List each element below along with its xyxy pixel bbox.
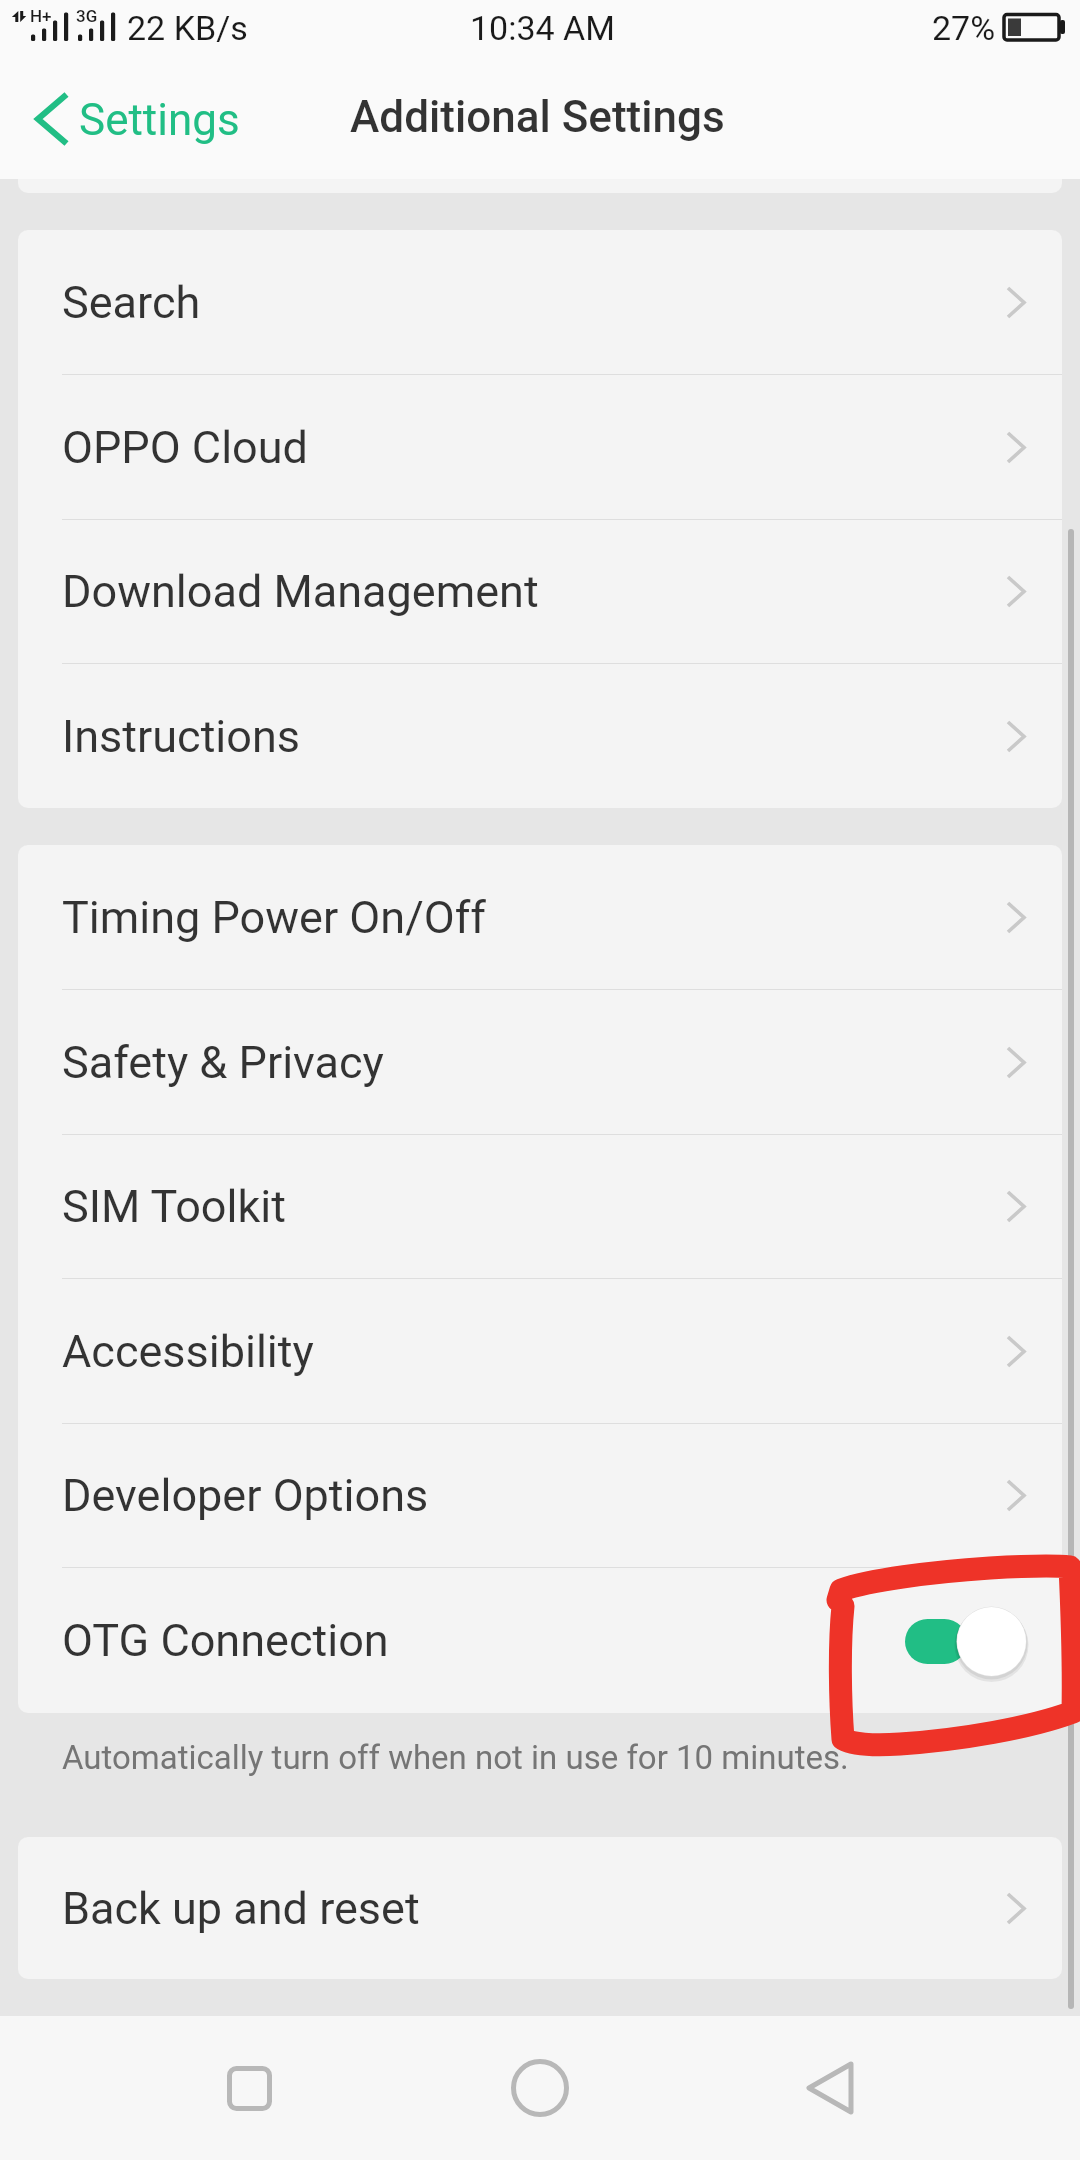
button[interactable]: Timing Power On/Off [18, 845, 1062, 990]
staticText: Safety & Privacy [62, 1036, 384, 1089]
staticText: Search [62, 276, 201, 329]
staticText: 22 KB/s [127, 8, 248, 48]
button[interactable]: OTG Connection [18, 1568, 1062, 1713]
button[interactable]: OTG Connection toggle [902, 1601, 1026, 1681]
button[interactable]: Safety & Privacy [18, 990, 1062, 1135]
staticText: 27% [932, 8, 996, 48]
staticText: Instructions [62, 710, 301, 763]
button[interactable]: SIM Toolkit [18, 1134, 1062, 1279]
staticText: Developer Options [62, 1469, 429, 1522]
button[interactable]: Accessibility [18, 1279, 1062, 1424]
button[interactable]: Download Management [18, 519, 1062, 664]
button[interactable]: Developer Options [18, 1423, 1062, 1568]
button[interactable]: Home [465, 2016, 615, 2160]
staticText: Settings [79, 94, 240, 146]
button[interactable]: Recent apps [174, 2016, 324, 2160]
button[interactable]: Search [18, 230, 1062, 375]
staticText: 10:34 AM [470, 8, 615, 48]
button[interactable]: Settings [22, 80, 254, 158]
button[interactable]: Back [755, 2016, 905, 2160]
staticText: Automatically turn off when not in use f… [62, 1738, 849, 1777]
staticText: Download Management [62, 565, 539, 618]
button[interactable]: OPPO Cloud [18, 375, 1062, 520]
staticText: SIM Toolkit [62, 1180, 286, 1233]
staticText: Timing Power On/Off [62, 891, 486, 944]
staticText: 3G [76, 6, 98, 26]
staticText: OPPO Cloud [62, 421, 308, 474]
staticText: Additional Settings [350, 91, 725, 143]
staticText: OTG Connection [62, 1614, 389, 1667]
staticText: Accessibility [62, 1325, 314, 1378]
staticText: H+ [30, 6, 52, 26]
button[interactable]: Back up and reset [18, 1837, 1062, 1979]
staticText: Back up and reset [62, 1882, 420, 1935]
button[interactable]: Instructions [18, 664, 1062, 808]
